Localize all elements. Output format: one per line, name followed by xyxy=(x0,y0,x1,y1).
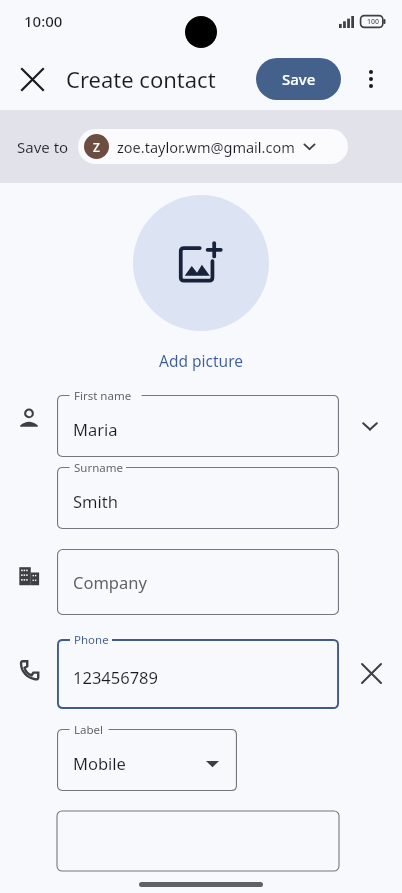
staticText: Maria xyxy=(73,418,118,440)
staticText: Phone xyxy=(74,632,109,648)
button[interactable]: Add picture xyxy=(133,195,269,331)
staticText: Add picture xyxy=(159,350,243,371)
staticText: First name xyxy=(74,388,132,404)
button[interactable]: Phone xyxy=(57,639,339,709)
staticText: Save xyxy=(282,69,316,89)
button[interactable]: Add picture xyxy=(151,348,251,373)
button[interactable]: Company xyxy=(57,549,339,615)
button[interactable]: Clear phone number xyxy=(353,655,389,691)
staticText: Label xyxy=(74,722,104,738)
staticText: Z xyxy=(93,139,100,155)
button[interactable]: Save xyxy=(256,58,341,100)
staticText: zoe.taylor.wm@gmail.com xyxy=(117,137,295,157)
button[interactable]: Z xyxy=(78,129,348,164)
button[interactable]: Expand name fields xyxy=(353,409,387,443)
staticText: Mobile xyxy=(73,752,126,774)
button[interactable]: Close xyxy=(8,55,56,103)
staticText: Company xyxy=(73,571,147,593)
staticText: Create contact xyxy=(66,64,216,94)
staticText: Smith xyxy=(73,490,118,512)
button[interactable]: Surname xyxy=(57,467,339,529)
staticText: 123456789 xyxy=(73,666,158,688)
button[interactable]: Label xyxy=(57,729,237,791)
button[interactable]: More options xyxy=(348,56,394,102)
staticText: Surname xyxy=(74,460,123,476)
button[interactable]: First name xyxy=(57,395,339,457)
staticText: 100 xyxy=(367,17,380,27)
staticText: Save to xyxy=(17,137,69,157)
staticText: 10:00 xyxy=(24,11,63,31)
button[interactable] xyxy=(57,811,339,871)
